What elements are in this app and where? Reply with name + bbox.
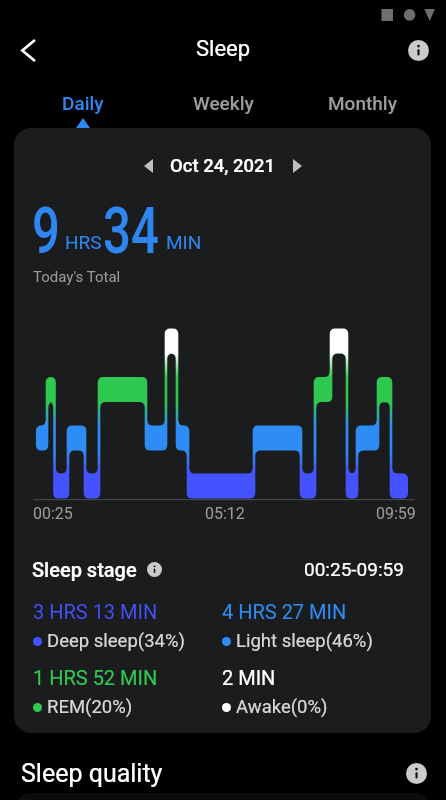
staticText: Sleep quality — [21, 759, 163, 788]
staticText: 34 — [103, 193, 159, 269]
staticText: Sleep — [196, 36, 251, 62]
staticText: Sleep stage — [32, 558, 137, 581]
staticText: 00:25-09:59 — [304, 558, 404, 580]
button[interactable]: Back — [5, 27, 51, 73]
button[interactable]: Next day — [284, 153, 310, 179]
button[interactable]: Sleep quality — [14, 748, 432, 798]
staticText: 00:25 — [33, 504, 73, 523]
button[interactable]: 1 HRS 52 MIN — [33, 666, 218, 718]
staticText: Daily — [62, 92, 104, 114]
staticText: 05:12 — [205, 504, 245, 523]
staticText: 3 HRS 13 MIN — [33, 600, 158, 623]
staticText: MIN — [166, 231, 202, 253]
staticText: 09:59 — [376, 504, 416, 523]
staticText: 1 HRS 52 MIN — [33, 666, 158, 689]
button[interactable]: Info — [396, 28, 440, 72]
staticText: Weekly — [193, 92, 254, 114]
staticText: Oct 24, 2021 — [170, 155, 275, 177]
button[interactable]: Daily — [13, 82, 153, 128]
staticText: Awake(0%) — [236, 696, 328, 718]
staticText: Monthly — [328, 92, 398, 114]
button[interactable]: 3 HRS 13 MIN — [33, 600, 218, 652]
button[interactable]: 2 MIN — [222, 666, 407, 718]
staticText: 2 MIN — [222, 666, 276, 689]
staticText: HRS — [65, 231, 102, 253]
button[interactable]: Sleep stage info — [145, 560, 163, 578]
button[interactable]: Monthly — [293, 82, 433, 128]
staticText: 4 HRS 27 MIN — [222, 600, 347, 623]
staticText: 9 — [32, 193, 60, 269]
other: Sleep quality info — [403, 760, 429, 786]
staticText: Deep sleep(34%) — [47, 630, 185, 652]
staticText: Light sleep(46%) — [236, 630, 373, 652]
staticText: Today's Total — [33, 268, 121, 286]
button[interactable]: Previous day — [135, 153, 161, 179]
button[interactable]: 4 HRS 27 MIN — [222, 600, 407, 652]
staticText: REM(20%) — [47, 696, 133, 718]
button[interactable]: Weekly — [153, 82, 293, 128]
